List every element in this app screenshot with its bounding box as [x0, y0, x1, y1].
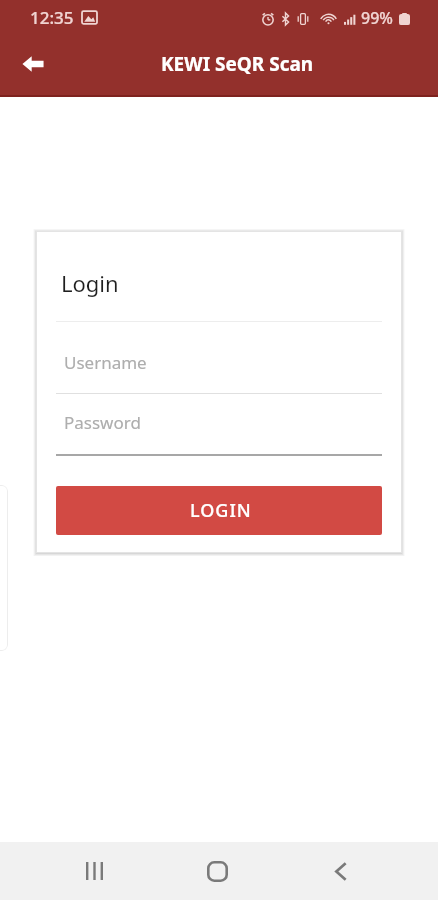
button[interactable]: LOGIN — [56, 486, 382, 535]
staticText: LOGIN — [190, 498, 252, 523]
staticText: Password — [64, 411, 141, 434]
staticText: KEWI SeQR Scan — [161, 51, 314, 77]
staticText: Login — [61, 268, 119, 298]
button[interactable]: Back — [9, 40, 57, 88]
staticText: 99% — [361, 7, 393, 29]
staticText: 12:35 — [30, 6, 74, 29]
staticText: Username — [64, 351, 147, 374]
button[interactable]: Recent apps — [70, 847, 118, 895]
button[interactable]: Back — [317, 847, 365, 895]
button[interactable]: Password — [56, 399, 382, 456]
button[interactable]: Home — [193, 847, 241, 895]
button[interactable]: Username — [56, 339, 382, 394]
